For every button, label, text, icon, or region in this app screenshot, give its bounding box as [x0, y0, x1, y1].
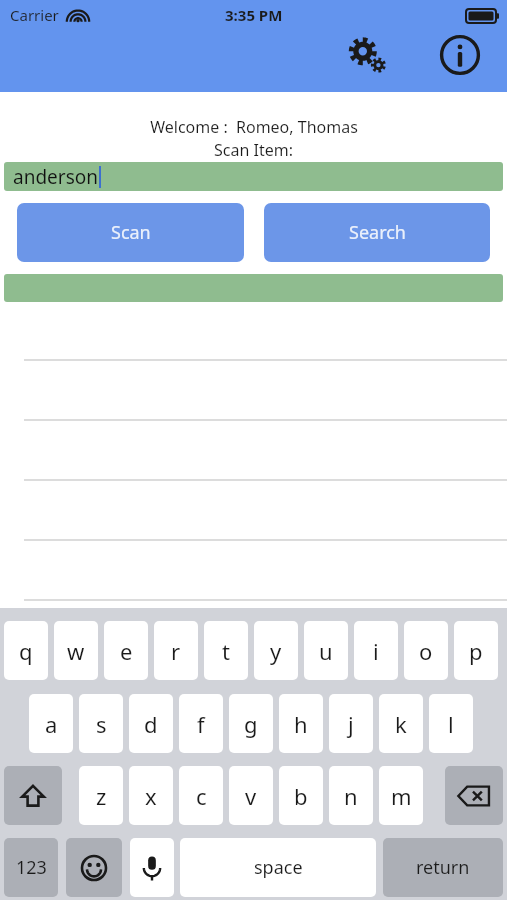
staticText: Carrier	[10, 5, 59, 25]
button[interactable]: u	[304, 621, 348, 680]
staticText: space	[254, 855, 303, 880]
staticText: j	[348, 709, 354, 739]
button[interactable]: return	[383, 838, 503, 897]
staticText: u	[319, 636, 333, 666]
button[interactable]: e	[104, 621, 148, 680]
button[interactable]: Settings	[342, 32, 394, 78]
button[interactable]: z	[79, 766, 123, 825]
staticText: p	[469, 636, 483, 666]
staticText: anderson	[13, 164, 98, 190]
staticText: 3:35 PM	[225, 5, 283, 25]
button[interactable]: c	[179, 766, 223, 825]
button[interactable]: p	[454, 621, 498, 680]
staticText: s	[96, 709, 107, 739]
button[interactable]: o	[404, 621, 448, 680]
button[interactable]: h	[279, 694, 323, 753]
staticText: t	[222, 636, 230, 666]
staticText: q	[19, 636, 33, 666]
button[interactable]: m	[379, 766, 423, 825]
staticText: g	[244, 709, 258, 739]
staticText: return	[416, 855, 470, 880]
staticText: f	[197, 709, 205, 739]
button[interactable]: l	[429, 694, 473, 753]
button[interactable]: Information	[432, 32, 488, 78]
staticText: r	[171, 636, 181, 666]
button[interactable]: y	[254, 621, 298, 680]
button[interactable]: d	[129, 694, 173, 753]
staticText: x	[145, 781, 157, 811]
staticText: l	[448, 709, 454, 739]
button[interactable]: Scan	[17, 203, 244, 262]
button[interactable]: x	[129, 766, 173, 825]
button[interactable]: r	[154, 621, 198, 680]
button[interactable]: j	[329, 694, 373, 753]
staticText: c	[196, 781, 207, 811]
button[interactable]: v	[229, 766, 273, 825]
staticText: a	[45, 709, 58, 739]
button[interactable]: q	[4, 621, 48, 680]
button[interactable]: anderson	[4, 162, 503, 191]
staticText: e	[120, 636, 133, 666]
button[interactable]: space	[180, 838, 376, 897]
button[interactable]: a	[29, 694, 73, 753]
button[interactable]: g	[229, 694, 273, 753]
staticText: n	[344, 781, 358, 811]
button[interactable]: 123	[4, 838, 58, 897]
staticText: Scan Item:	[214, 139, 293, 161]
button[interactable]: Shift	[4, 766, 62, 825]
button[interactable]: b	[279, 766, 323, 825]
staticText: Welcome : Romeo, Thomas	[150, 116, 358, 138]
button[interactable]: f	[179, 694, 223, 753]
button[interactable]: s	[79, 694, 123, 753]
staticText: v	[245, 781, 257, 811]
staticText: k	[395, 709, 407, 739]
staticText: i	[373, 636, 379, 666]
button[interactable]: Emoji	[66, 838, 122, 897]
staticText: d	[144, 709, 158, 739]
staticText: o	[419, 636, 433, 666]
button[interactable]: n	[329, 766, 373, 825]
staticText: w	[67, 636, 85, 666]
button[interactable]: i	[354, 621, 398, 680]
staticText: m	[391, 781, 412, 811]
button[interactable]: Search	[264, 203, 490, 262]
staticText: Search	[349, 220, 406, 245]
button[interactable]: w	[54, 621, 98, 680]
staticText: b	[294, 781, 308, 811]
staticText: z	[96, 781, 107, 811]
button[interactable]: Backspace	[445, 766, 503, 825]
button[interactable]: t	[204, 621, 248, 680]
staticText: h	[294, 709, 308, 739]
staticText: 123	[16, 855, 47, 880]
staticText: Scan	[111, 220, 151, 245]
button[interactable]: Dictation	[130, 838, 174, 897]
staticText: y	[270, 636, 282, 666]
button[interactable]: k	[379, 694, 423, 753]
